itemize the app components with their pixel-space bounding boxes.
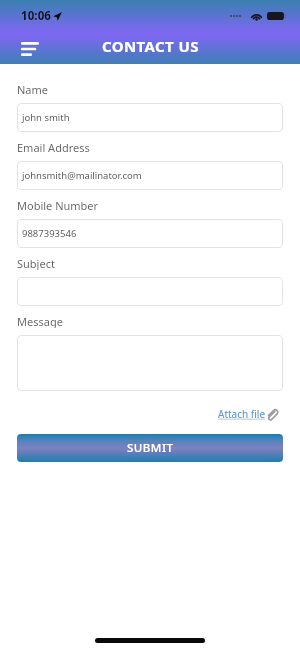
staticText: SUBMIT xyxy=(127,440,174,456)
button[interactable]: Attach file xyxy=(218,407,277,421)
staticText: Message xyxy=(17,314,63,328)
button[interactable]: SUBMIT xyxy=(17,434,283,462)
staticText: johnsmith@mailinator.com xyxy=(22,169,142,182)
button[interactable]: 9887393546 xyxy=(17,219,283,248)
staticText: Name xyxy=(17,82,49,96)
other: Attach file xyxy=(266,409,277,420)
staticText: 10:06 xyxy=(21,8,52,24)
button[interactable] xyxy=(17,335,283,391)
staticText: Attach file xyxy=(218,407,266,421)
button[interactable]: Open navigation menu xyxy=(15,33,44,59)
button[interactable] xyxy=(17,277,283,306)
staticText: Mobile Number xyxy=(17,198,99,212)
staticText: Subject xyxy=(17,256,55,270)
staticText: 9887393546 xyxy=(22,227,77,240)
button[interactable]: john smith xyxy=(17,103,283,132)
staticText: Email Address xyxy=(17,140,90,154)
button[interactable]: johnsmith@mailinator.com xyxy=(17,161,283,190)
staticText: john smith xyxy=(22,111,70,124)
staticText: CONTACT US xyxy=(102,36,199,56)
